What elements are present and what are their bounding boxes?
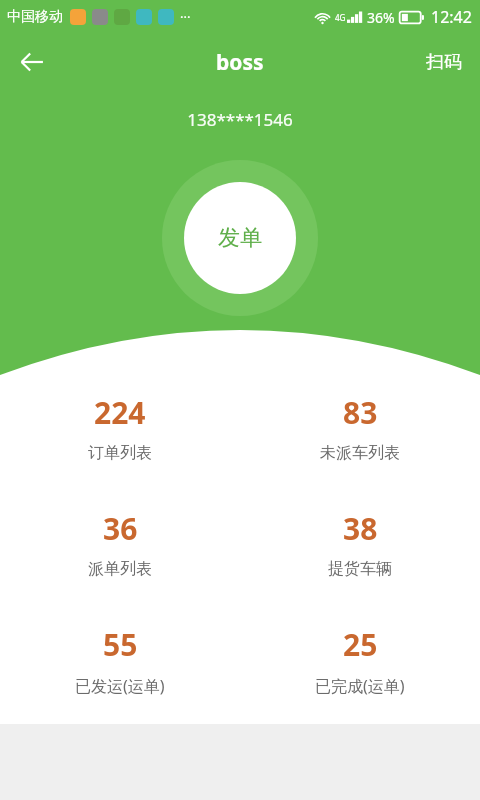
button[interactable]: 36 (76, 506, 164, 581)
staticText: 55 (103, 624, 138, 665)
button[interactable]: 55 (63, 622, 177, 699)
staticText: 扫码 (426, 51, 462, 74)
staticText: 36 (103, 508, 138, 549)
staticText: 未派车列表 (320, 443, 400, 463)
staticText: boss (216, 48, 264, 77)
button[interactable]: 扫码 (414, 41, 474, 84)
staticText: 36% (367, 8, 395, 27)
staticText: 发单 (218, 224, 262, 252)
staticText: 25 (343, 624, 378, 665)
staticText: 已发运(运单) (75, 675, 165, 697)
staticText: 224 (94, 392, 146, 433)
staticText: ··· (180, 8, 191, 26)
button[interactable]: 发单 (162, 160, 318, 316)
staticText: 4G (335, 12, 346, 23)
staticText: 138****1546 (0, 108, 480, 131)
button[interactable]: 83 (308, 390, 412, 465)
button[interactable]: 25 (303, 622, 417, 699)
staticText: 中国移动 (7, 8, 63, 26)
staticText: 派单列表 (88, 559, 152, 579)
staticText: 12:42 (431, 6, 472, 28)
staticText: 38 (343, 508, 378, 549)
staticText: 已完成(运单) (315, 675, 405, 697)
button[interactable]: 38 (316, 506, 404, 581)
button[interactable]: 224 (76, 390, 164, 465)
button[interactable]: Back (8, 38, 56, 86)
staticText: 提货车辆 (328, 559, 392, 579)
staticText: 83 (343, 392, 378, 433)
staticText: 订单列表 (88, 443, 152, 463)
